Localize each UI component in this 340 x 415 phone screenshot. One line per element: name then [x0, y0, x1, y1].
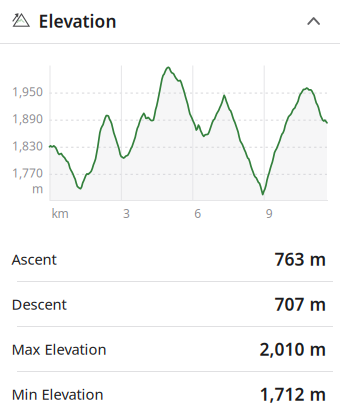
staticText: Ascent — [11, 249, 56, 269]
staticText: 1,770 — [12, 165, 43, 181]
staticText: 1,950 — [12, 84, 43, 99]
staticText: 707 m — [274, 292, 326, 315]
staticText: 9 — [266, 205, 273, 221]
button[interactable]: Ascent — [0, 237, 340, 281]
button[interactable]: Min Elevation — [0, 372, 340, 415]
staticText: Max Elevation — [11, 339, 106, 359]
staticText: 763 m — [274, 247, 326, 270]
staticText: 1,712 m — [259, 382, 326, 405]
staticText: Min Elevation — [11, 384, 103, 404]
staticText: Descent — [11, 294, 66, 314]
staticText: 3 — [123, 205, 130, 221]
staticText: 6 — [194, 205, 201, 221]
staticText: 1,890 — [12, 111, 43, 127]
button[interactable]: Max Elevation — [0, 327, 340, 371]
staticText: Elevation — [38, 9, 116, 32]
staticText: 1,830 — [12, 138, 43, 154]
button[interactable]: Elevation — [0, 0, 340, 43]
staticText: km — [51, 205, 68, 221]
staticText: 2,010 m — [259, 337, 326, 360]
button[interactable]: Descent — [0, 282, 340, 326]
staticText: m — [32, 180, 43, 196]
